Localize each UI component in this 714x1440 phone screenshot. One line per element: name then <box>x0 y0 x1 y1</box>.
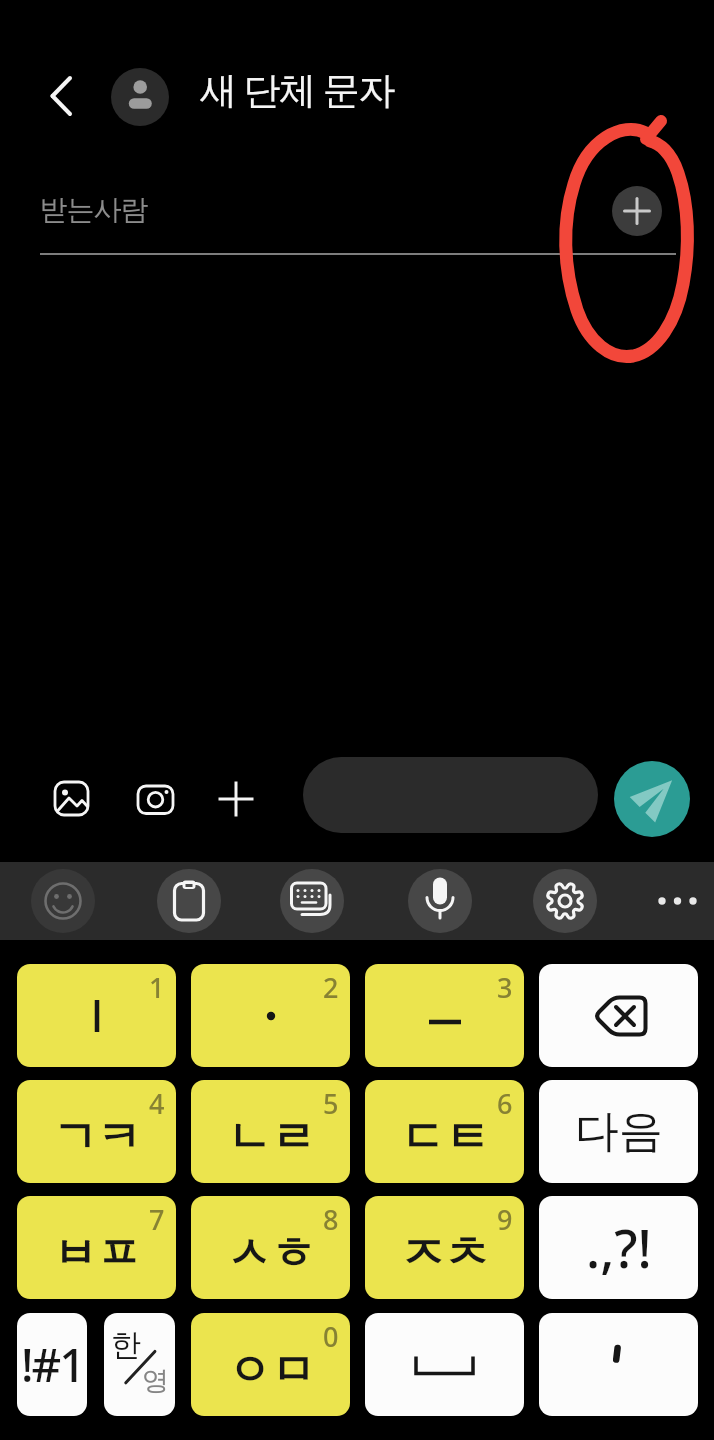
staticText: .,?! <box>586 1212 652 1283</box>
button[interactable] <box>303 757 598 833</box>
staticText: 새 단체 문자 <box>200 63 394 114</box>
button[interactable]: 1 <box>17 964 176 1067</box>
staticText: 영 <box>142 1364 169 1398</box>
staticText: 다음 <box>575 1104 663 1159</box>
button[interactable] <box>614 761 690 837</box>
staticText: 3 <box>497 969 513 1006</box>
button[interactable] <box>111 68 169 126</box>
button[interactable] <box>612 186 662 236</box>
button[interactable]: ㅂㅍ <box>17 1196 176 1299</box>
button[interactable]: ㄷㅌ <box>365 1080 524 1183</box>
staticText: 5 <box>323 1085 339 1122</box>
staticText: 1 <box>149 969 165 1006</box>
staticText: 4 <box>149 1085 165 1122</box>
button[interactable]: !#1 <box>17 1313 87 1416</box>
staticText: 받는사람 <box>40 192 148 227</box>
button[interactable]: 3 <box>365 964 524 1067</box>
button[interactable] <box>214 777 258 821</box>
button[interactable] <box>133 777 177 821</box>
staticText: ㅇㅁ <box>227 1343 315 1398</box>
staticText: 2 <box>323 969 339 1006</box>
button[interactable]: ㅈㅊ <box>365 1196 524 1299</box>
button[interactable] <box>280 869 344 933</box>
button[interactable] <box>646 887 708 915</box>
button[interactable] <box>157 869 221 933</box>
staticText: 한 <box>111 1326 141 1364</box>
button[interactable] <box>365 1313 524 1416</box>
staticText: ㅈㅊ <box>401 1226 489 1281</box>
staticText: ㄷㅌ <box>401 1110 489 1165</box>
button[interactable]: ㄴㄹ <box>191 1080 350 1183</box>
staticText: !#1 <box>21 1333 84 1396</box>
staticText: ㅅㅎ <box>227 1226 315 1281</box>
staticText: ㅂㅍ <box>53 1226 141 1281</box>
button[interactable] <box>533 869 597 933</box>
button[interactable]: ㅅㅎ <box>191 1196 350 1299</box>
button[interactable]: 다음 <box>539 1080 698 1183</box>
button[interactable]: ㅇㅁ <box>191 1313 350 1416</box>
button[interactable] <box>539 1313 698 1416</box>
button[interactable] <box>38 72 84 118</box>
staticText: 9 <box>497 1201 513 1238</box>
staticText: ㄱㅋ <box>53 1110 141 1165</box>
button[interactable] <box>408 869 472 933</box>
staticText: 7 <box>149 1201 165 1238</box>
button[interactable]: 2 <box>191 964 350 1067</box>
staticText: ㄴㄹ <box>227 1110 315 1165</box>
button[interactable]: .,?! <box>539 1196 698 1299</box>
staticText: 8 <box>323 1201 339 1238</box>
button[interactable] <box>539 964 698 1067</box>
button[interactable]: 한 <box>104 1313 175 1416</box>
button[interactable]: ㄱㅋ <box>17 1080 176 1183</box>
staticText: 6 <box>497 1085 513 1122</box>
button[interactable] <box>50 777 94 821</box>
button[interactable] <box>31 869 95 933</box>
staticText: 0 <box>323 1318 339 1355</box>
